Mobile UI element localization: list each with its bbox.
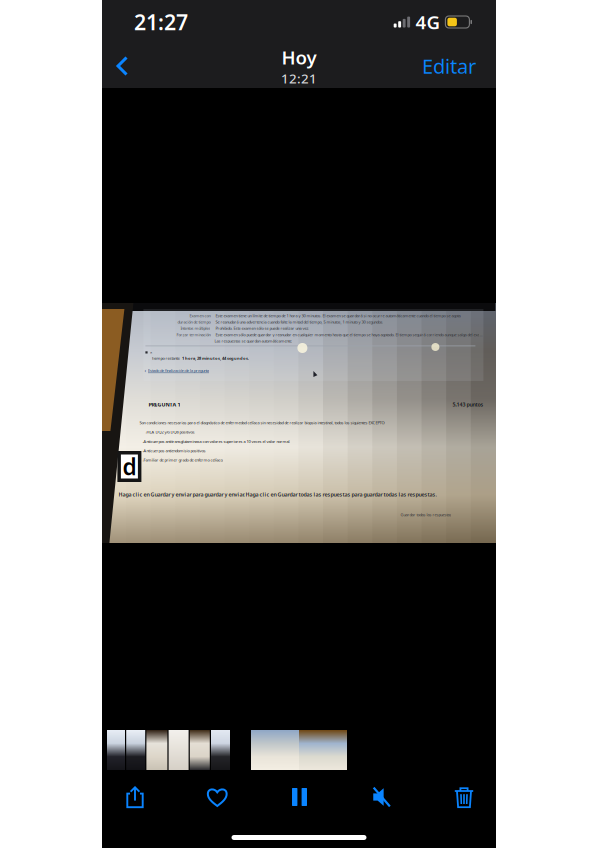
button[interactable]: Photo 6 bbox=[211, 730, 230, 770]
staticText: × bbox=[150, 350, 152, 355]
staticText: Son condiciones necesarias para el diagn… bbox=[139, 420, 385, 425]
staticText: Hoy bbox=[281, 45, 316, 70]
staticText: duración de tiempo bbox=[177, 319, 210, 325]
staticText: Prohibido. Este examen sólo se puede rea… bbox=[215, 326, 309, 331]
staticText: -HLA DQ2 y/o DQ8 positivos. bbox=[145, 429, 195, 435]
staticText: Se reanudará una advertencia cuando falt… bbox=[215, 319, 383, 325]
staticText: -Anticuerpos antiendomisio positivos. bbox=[142, 448, 206, 453]
button[interactable]: Back bbox=[102, 46, 144, 86]
button[interactable]: Delete bbox=[432, 776, 496, 818]
button[interactable]: Photo 3 bbox=[146, 730, 167, 770]
button[interactable]: Photo 2 bbox=[126, 730, 145, 770]
staticText: 1 hora, 28 minutos, 44 segundos. bbox=[182, 356, 249, 361]
staticText: 5,143 puntos bbox=[452, 401, 483, 408]
button[interactable]: Mute bbox=[350, 776, 414, 818]
staticText: 21:27 bbox=[134, 8, 188, 36]
button[interactable]: Pause bbox=[267, 776, 331, 818]
staticText: Las respuestas se guardan automáticament… bbox=[214, 338, 292, 343]
staticText: Haga clic en Guardar y enviar para guard… bbox=[118, 491, 436, 498]
staticText: Forzar terminación bbox=[176, 332, 210, 337]
staticText: Guardar todas las respuestas bbox=[400, 512, 451, 517]
staticText: 4G bbox=[415, 10, 440, 34]
staticText: PREGUNTA 1 bbox=[148, 401, 180, 408]
staticText: Tiempo restante: bbox=[151, 356, 180, 361]
button[interactable]: Photo 1 bbox=[107, 730, 125, 770]
staticText: Este examen tiene un límite de tiempo de… bbox=[215, 313, 461, 318]
staticText: Este examen sólo puede guardar y reanuda… bbox=[215, 332, 483, 337]
staticText: Examen con bbox=[189, 313, 210, 318]
staticText: Intentos múltiples bbox=[180, 326, 210, 331]
staticText: Estado de finalización de la pregunta bbox=[148, 368, 209, 373]
staticText: ‹ bbox=[144, 367, 146, 374]
staticText: 12:21 bbox=[281, 69, 317, 87]
button[interactable]: Current video bbox=[251, 730, 347, 770]
staticText: -Anticuerpos antitransglutaminasa con va… bbox=[142, 439, 290, 444]
button[interactable]: Editar bbox=[406, 42, 496, 90]
button[interactable]: Photo 4 bbox=[169, 730, 189, 770]
staticText: -Familiar de primer grado de enfermo cel… bbox=[142, 457, 223, 463]
staticText: Editar bbox=[422, 53, 476, 79]
staticText: d bbox=[122, 451, 136, 481]
button[interactable]: Favourite bbox=[185, 776, 249, 818]
button[interactable]: Photo 5 bbox=[190, 730, 210, 770]
button[interactable]: Share bbox=[103, 776, 167, 818]
